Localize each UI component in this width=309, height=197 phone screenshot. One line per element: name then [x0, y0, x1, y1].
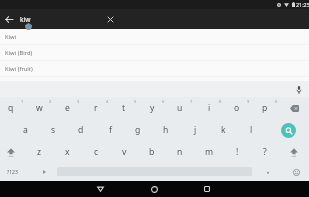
staticText: 0: [275, 99, 278, 104]
staticText: 3: [77, 99, 80, 104]
staticText: a: [23, 124, 28, 136]
staticText: g: [135, 124, 141, 136]
button[interactable]: Period: [254, 163, 282, 181]
staticText: p: [262, 102, 268, 114]
button[interactable]: Kiwi (fruit): [0, 61, 309, 77]
button[interactable]: i: [195, 97, 223, 119]
button[interactable]: Shift: [0, 141, 25, 163]
staticText: t: [122, 102, 126, 114]
staticText: kiw: [20, 15, 31, 24]
button[interactable]: c: [82, 141, 110, 163]
staticText: Kiwi (fruit): [5, 65, 33, 73]
staticText: r: [94, 102, 98, 114]
staticText: x: [65, 146, 70, 158]
button[interactable]: Home: [130, 181, 178, 197]
staticText: 5: [134, 99, 137, 104]
button[interactable]: Numbers and symbols: [0, 163, 26, 181]
staticText: 4: [106, 99, 109, 104]
button[interactable]: n: [166, 141, 194, 163]
button[interactable]: Clear search: [102, 11, 118, 27]
staticText: f: [109, 124, 112, 136]
button[interactable]: w: [25, 97, 53, 119]
staticText: q: [8, 102, 14, 114]
staticText: 8: [219, 99, 222, 104]
button[interactable]: t: [110, 97, 138, 119]
button[interactable]: Voice input: [293, 84, 304, 95]
button[interactable]: j: [181, 119, 209, 141]
staticText: z: [37, 146, 42, 158]
staticText: 2: [49, 99, 52, 104]
button[interactable]: l: [237, 119, 265, 141]
button[interactable]: f: [96, 119, 124, 141]
button[interactable]: s: [39, 119, 67, 141]
staticText: Kiwi (Bird): [5, 49, 33, 57]
staticText: 1: [21, 99, 24, 104]
staticText: u: [177, 102, 183, 114]
staticText: w: [36, 102, 43, 114]
button[interactable]: Kiwi: [0, 29, 309, 45]
staticText: 9: [247, 99, 250, 104]
staticText: k: [221, 124, 226, 136]
staticText: n: [177, 146, 183, 158]
staticText: y: [150, 102, 155, 114]
button[interactable]: d: [67, 119, 95, 141]
staticText: e: [65, 102, 70, 114]
staticText: Kiwi: [5, 33, 17, 41]
button[interactable]: Recent apps: [183, 181, 231, 197]
staticText: l: [250, 124, 253, 136]
button[interactable]: x: [53, 141, 81, 163]
staticText: j: [194, 124, 197, 136]
staticText: d: [78, 124, 84, 136]
button[interactable]: r: [82, 97, 110, 119]
button[interactable]: Kiwi (Bird): [0, 45, 309, 61]
button[interactable]: u: [166, 97, 194, 119]
button[interactable]: Back: [1, 11, 17, 27]
button[interactable]: g: [124, 119, 152, 141]
staticText: v: [122, 146, 127, 158]
button[interactable]: Backspace: [280, 97, 308, 119]
button[interactable]: o: [223, 97, 251, 119]
button[interactable]: ?: [251, 141, 279, 163]
staticText: 21:25: [296, 1, 309, 8]
staticText: m: [205, 146, 214, 158]
button[interactable]: Back: [76, 181, 124, 197]
button[interactable]: q: [0, 97, 25, 119]
button[interactable]: Shift: [280, 141, 308, 163]
staticText: 7: [190, 99, 193, 104]
staticText: i: [208, 102, 211, 114]
button[interactable]: p: [251, 97, 279, 119]
staticText: ?: [263, 146, 267, 158]
staticText: s: [51, 124, 56, 136]
button[interactable]: Comma: [30, 163, 58, 181]
button[interactable]: a: [11, 119, 39, 141]
button[interactable]: e: [53, 97, 81, 119]
button[interactable]: Search: [274, 119, 302, 141]
button[interactable]: b: [138, 141, 166, 163]
staticText: 6: [162, 99, 165, 104]
button[interactable]: !: [223, 141, 251, 163]
button[interactable]: v: [110, 141, 138, 163]
button[interactable]: Emoji: [282, 163, 309, 181]
staticText: ?123: [7, 169, 18, 176]
staticText: h: [163, 124, 169, 136]
button[interactable]: z: [25, 141, 53, 163]
button[interactable]: m: [195, 141, 223, 163]
staticText: c: [94, 146, 99, 158]
button[interactable]: k: [209, 119, 237, 141]
staticText: !: [236, 146, 239, 158]
button[interactable]: h: [152, 119, 180, 141]
staticText: b: [149, 146, 155, 158]
button[interactable]: y: [138, 97, 166, 119]
staticText: o: [234, 102, 240, 114]
